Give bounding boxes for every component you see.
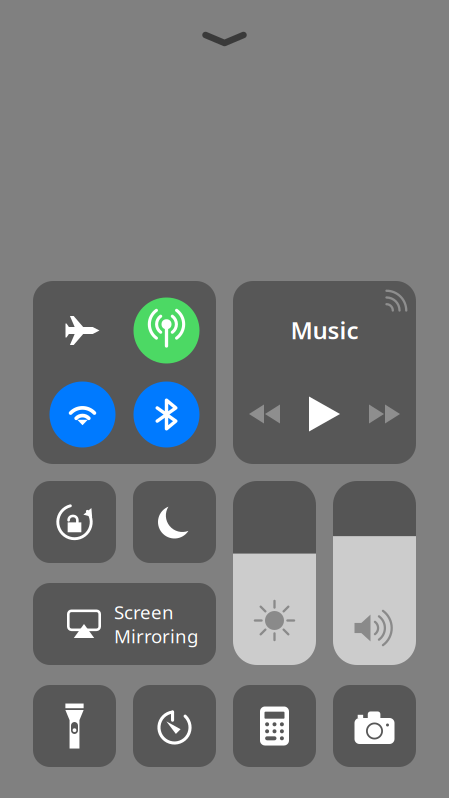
- button[interactable]: Rotation Lock: [33, 481, 116, 563]
- button[interactable]: Do Not Disturb: [133, 481, 216, 563]
- button[interactable]: Volume: [333, 481, 416, 665]
- button[interactable]: Timer: [133, 685, 216, 767]
- button[interactable]: Wi-Fi: [49, 381, 115, 447]
- button[interactable]: Next Track: [358, 393, 410, 435]
- button[interactable]: Airplane Mode: [49, 297, 115, 363]
- button[interactable]: Play: [298, 393, 350, 435]
- staticText: Screen: [114, 600, 174, 624]
- button[interactable]: Brightness: [233, 481, 316, 665]
- button[interactable]: Screen: [33, 583, 216, 665]
- button[interactable]: Flashlight: [33, 685, 116, 767]
- button[interactable]: AirPlay: [380, 287, 410, 317]
- button[interactable]: Camera: [333, 685, 416, 767]
- button[interactable]: Cellular Data: [133, 297, 199, 363]
- staticText: Mirroring: [114, 623, 198, 648]
- button[interactable]: Bluetooth: [133, 381, 199, 447]
- button[interactable]: Calculator: [233, 685, 316, 767]
- button[interactable]: Close Control Center: [169, 21, 279, 57]
- button[interactable]: Previous Track: [238, 393, 290, 435]
- staticText: Music: [290, 314, 358, 346]
